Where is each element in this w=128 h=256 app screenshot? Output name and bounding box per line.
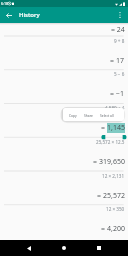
staticText: 12 × 350	[106, 206, 125, 212]
button[interactable]: More options	[114, 9, 126, 21]
button[interactable]: Select all	[100, 108, 114, 121]
staticText: 6:18	[1, 1, 9, 6]
staticText: =	[110, 56, 116, 66]
button[interactable]: 12 × 350	[0, 205, 128, 238]
staticText: =	[110, 89, 116, 99]
staticText: Select all	[100, 113, 114, 117]
button[interactable]: 5 − 6	[0, 70, 128, 103]
staticText: 12 × 2,131	[102, 173, 125, 179]
staticText: =	[101, 123, 107, 133]
staticText: 5 − 6	[114, 71, 125, 77]
staticText: 1,145	[107, 123, 125, 133]
button[interactable]: = 24	[0, 0, 128, 36]
staticText: = 24	[111, 25, 125, 35]
staticText: −1	[116, 89, 125, 99]
staticText: Share	[84, 113, 93, 117]
button[interactable]: Back	[23, 242, 35, 254]
button[interactable]: 4,580 ÷ 4	[0, 104, 128, 137]
button[interactable]: Home	[58, 242, 70, 254]
button[interactable]: 9 + 8	[0, 37, 128, 70]
button[interactable]: 25,572 × 12.5	[0, 138, 128, 171]
button[interactable]: Share	[84, 108, 93, 121]
staticText: 9 + 8	[114, 38, 125, 44]
button[interactable]: Copy	[69, 108, 77, 121]
staticText: Copy	[69, 113, 77, 117]
staticText: 4,580 ÷ 4	[105, 105, 125, 111]
staticText: 4,200	[107, 224, 125, 234]
staticText: =	[93, 157, 99, 167]
staticText: 25,572 × 12.5	[96, 139, 125, 145]
button[interactable]: Recent apps	[93, 242, 105, 254]
staticText: History	[19, 11, 40, 19]
staticText: 17	[116, 56, 125, 66]
button[interactable]: 12 × 2,131	[0, 172, 128, 205]
staticText: =	[101, 224, 107, 234]
staticText: 25,572	[103, 191, 125, 201]
button[interactable]: Navigate up	[3, 9, 15, 21]
staticText: 319,650	[99, 157, 125, 167]
staticText: =	[97, 191, 103, 201]
